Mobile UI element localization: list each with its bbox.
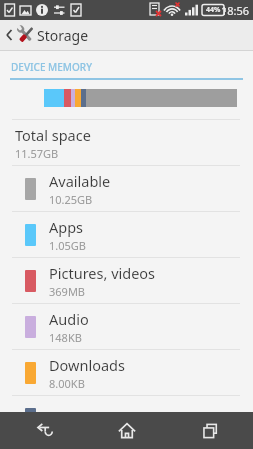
- staticText: Audio: [49, 309, 89, 329]
- staticText: 1.05GB: [49, 238, 86, 253]
- button[interactable]: Recent apps: [169, 412, 253, 449]
- button[interactable]: Navigate up: [0, 20, 253, 50]
- staticText: 44%: [206, 5, 221, 15]
- button[interactable]: Apps: [0, 212, 253, 257]
- button[interactable]: Audio: [0, 304, 253, 349]
- button[interactable]: Total space: [0, 120, 253, 165]
- staticText: Available: [49, 171, 111, 191]
- staticText: 369MB: [49, 284, 86, 299]
- button[interactable]: Cached data: [0, 396, 253, 441]
- staticText: 8.00KB: [49, 376, 85, 391]
- button[interactable]: Downloads: [0, 350, 253, 395]
- staticText: Storage: [37, 26, 89, 45]
- staticText: Total space: [15, 125, 91, 145]
- button[interactable]: Pictures, videos: [0, 258, 253, 303]
- staticText: 18:56: [221, 3, 250, 18]
- staticText: Pictures, videos: [49, 263, 156, 283]
- staticText: DEVICE MEMORY: [11, 60, 93, 74]
- button[interactable]: Back: [0, 412, 85, 449]
- staticText: 148KB: [49, 330, 82, 345]
- button[interactable]: Home: [85, 412, 169, 449]
- staticText: Apps: [49, 217, 84, 237]
- staticText: 11.57GB: [15, 146, 59, 161]
- button[interactable]: Available: [0, 166, 253, 211]
- staticText: 10.25GB: [49, 192, 93, 207]
- staticText: Cached data: [49, 409, 134, 429]
- staticText: Downloads: [49, 355, 125, 375]
